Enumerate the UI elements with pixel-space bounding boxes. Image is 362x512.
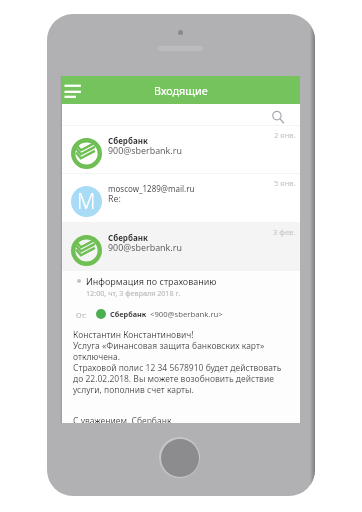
button[interactable]: Сбербанк	[62, 222, 300, 271]
staticText: Константин Константинович! Услуга «Финан…	[73, 329, 282, 395]
staticText: Сбербанк	[108, 232, 258, 243]
staticText: M	[77, 187, 96, 216]
staticText: Входящие	[154, 83, 208, 98]
staticText: От:	[76, 310, 87, 320]
button[interactable]: Menu	[62, 76, 86, 104]
staticText: Сбербанк	[108, 135, 258, 146]
button[interactable]: Search	[264, 104, 300, 125]
staticText: Сбербанк	[110, 309, 147, 319]
staticText: moscow_1289@mail.ru	[108, 183, 258, 194]
staticText: С уважением, Сбербанк	[73, 415, 172, 423]
staticText: 12:00, чт, 3 февраля 2018 г.	[86, 288, 181, 298]
staticText: 2 янв.	[274, 130, 296, 140]
button[interactable]: Сбербанк	[62, 125, 300, 174]
staticText: 5 янв.	[274, 178, 296, 188]
staticText: 900@sberbank.ru	[108, 241, 278, 253]
button[interactable]: M	[62, 173, 300, 222]
staticText: <900@sberbank.ru>	[150, 309, 223, 319]
staticText: 3 фев.	[273, 227, 296, 237]
staticText: Информация по страхованию	[86, 275, 217, 287]
staticText: Re:	[108, 192, 278, 204]
staticText: 900@sberbank.ru	[108, 144, 278, 156]
